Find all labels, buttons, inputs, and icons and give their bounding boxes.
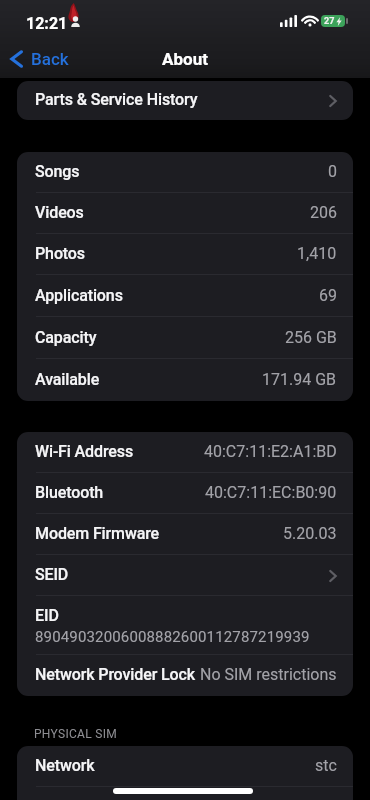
button[interactable]: Capacity <box>17 317 353 359</box>
staticText: Songs <box>35 162 80 181</box>
staticText: 89049032006008882600112787219939 <box>35 628 310 646</box>
button[interactable]: Network Provider Lock <box>17 655 353 696</box>
staticText: 40:C7:11:EC:B0:90 <box>205 483 337 502</box>
button[interactable]: Network <box>17 746 353 787</box>
staticText: Back <box>31 49 69 69</box>
button[interactable]: SEID <box>17 555 353 596</box>
staticText: Available <box>35 370 100 389</box>
button[interactable]: Photos <box>17 234 353 275</box>
button[interactable]: Parts & Service History <box>17 81 353 120</box>
staticText: 206 <box>310 203 337 222</box>
staticText: Photos <box>35 244 85 263</box>
staticText: 0 <box>328 162 337 181</box>
button[interactable]: Available <box>17 359 353 401</box>
button[interactable]: EID <box>17 596 353 655</box>
staticText: 12:21 <box>26 14 68 33</box>
staticText: Parts & Service History <box>35 90 198 109</box>
staticText: SEID <box>35 565 69 584</box>
staticText: No SIM restrictions <box>200 665 337 684</box>
staticText: Modem Firmware <box>35 524 160 543</box>
button[interactable]: Wi-Fi Address <box>17 432 353 473</box>
staticText: stc <box>315 756 337 775</box>
staticText: Bluetooth <box>35 483 104 502</box>
staticText: 256 GB <box>285 328 337 347</box>
staticText: Network Provider Lock <box>35 665 196 684</box>
staticText: Capacity <box>35 328 97 347</box>
staticText: Wi-Fi Address <box>35 442 134 461</box>
staticText: 5.20.03 <box>283 524 337 543</box>
button[interactable]: Songs <box>17 152 353 193</box>
button[interactable]: Applications <box>17 275 353 317</box>
button[interactable]: Videos <box>17 193 353 234</box>
staticText: About <box>162 49 208 69</box>
staticText: 27 <box>324 16 335 27</box>
staticText: Videos <box>35 203 84 222</box>
button[interactable]: Modem Firmware <box>17 514 353 555</box>
button[interactable] <box>17 787 353 800</box>
staticText: Applications <box>35 286 123 305</box>
staticText: 69 <box>319 286 337 305</box>
button[interactable]: Back <box>0 44 79 74</box>
staticText: 171.94 GB <box>262 370 337 389</box>
staticText: 40:C7:11:E2:A1:BD <box>204 442 337 461</box>
button[interactable]: Bluetooth <box>17 473 353 514</box>
staticText: PHYSICAL SIM <box>34 727 118 741</box>
staticText: Network <box>35 756 95 775</box>
staticText: EID <box>35 606 60 625</box>
staticText: 1,410 <box>297 244 337 263</box>
